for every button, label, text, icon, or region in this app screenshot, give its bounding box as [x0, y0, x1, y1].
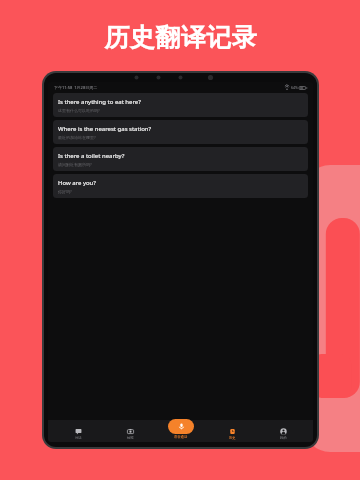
button[interactable]: Where is the nearest gas station? — [53, 120, 308, 144]
staticText: 我的 — [280, 436, 287, 440]
button[interactable]: 历史 — [207, 420, 258, 442]
staticText: 历史翻译记录 — [104, 22, 257, 53]
staticText: 请问附近有厕所吗? — [58, 162, 92, 167]
staticText: 对话 — [75, 436, 82, 440]
staticText: 拍照 — [127, 436, 134, 440]
button[interactable]: How are you? — [53, 174, 308, 198]
staticText: Where is the nearest gas station? — [58, 125, 152, 133]
button[interactable]: Voice translate — [168, 419, 194, 441]
staticText: 64% — [291, 85, 298, 90]
staticText: 你好吗? — [58, 189, 72, 194]
staticText: 下午11:58 1月28日周二 — [54, 85, 98, 90]
button[interactable]: 我的 — [258, 420, 309, 442]
button[interactable]: 拍照 — [104, 420, 156, 442]
staticText: Is there a toilet nearby? — [58, 152, 125, 160]
staticText: 历史 — [229, 436, 236, 440]
staticText: 最近的加油站在哪里? — [58, 135, 96, 140]
button[interactable]: Is there a toilet nearby? — [53, 147, 308, 171]
button[interactable]: Is there anything to eat here? — [53, 93, 308, 117]
staticText: How are you? — [58, 179, 96, 187]
button[interactable]: 对话 — [52, 420, 104, 442]
staticText: 语音通话 — [174, 435, 188, 439]
staticText: 这里有什么可以吃的吗? — [58, 108, 100, 113]
staticText: Is there anything to eat here? — [58, 98, 141, 106]
